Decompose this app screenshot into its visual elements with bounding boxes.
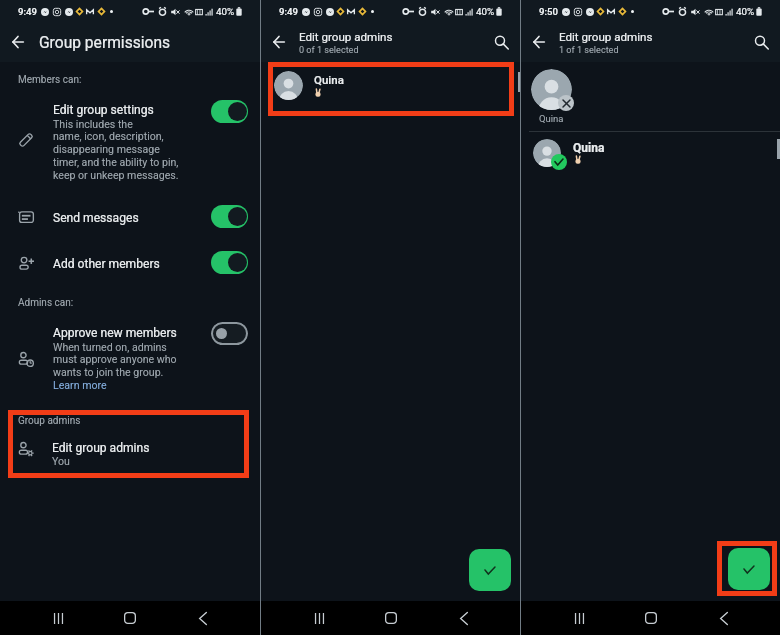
staticText: Members can: [18, 74, 82, 86]
button[interactable]: Navigate up [526, 29, 552, 55]
button[interactable]: Recents [36, 601, 80, 635]
button[interactable]: Remove Quina [528, 66, 580, 124]
staticText: Edit group admins [299, 30, 393, 44]
button[interactable]: Back [702, 601, 746, 635]
button[interactable]: Recents [557, 601, 601, 635]
staticText: 9:50 [539, 6, 558, 17]
staticText: 0 of 1 selected [299, 45, 359, 56]
staticText: 9:49 [18, 6, 37, 17]
staticText: Edit group admins [52, 441, 150, 455]
button[interactable]: Toggle on [211, 100, 248, 123]
button[interactable]: Toggle on [211, 251, 248, 274]
staticText: Send messages [53, 211, 139, 225]
button[interactable]: Navigate up [5, 29, 31, 55]
button[interactable]: Back [442, 601, 486, 635]
button[interactable]: Toggle on [211, 205, 248, 228]
staticText: Group admins [18, 415, 81, 427]
staticText: Quina [314, 73, 344, 86]
staticText: This includes the name, icon, descriptio… [53, 118, 179, 182]
button[interactable]: Quina [261, 64, 520, 114]
staticText: Quina [539, 113, 564, 124]
staticText: 40% [216, 6, 235, 17]
staticText: Add other members [53, 257, 160, 271]
staticText: 40% [736, 6, 755, 17]
staticText: Quina [573, 141, 605, 155]
button[interactable]: Back [181, 601, 225, 635]
staticText: When turned on, admins must approve anyo… [53, 341, 177, 379]
button[interactable]: Quina selected [521, 133, 780, 175]
staticText: Approve new members [53, 326, 177, 340]
button[interactable]: Recents [297, 601, 341, 635]
button[interactable]: Search [488, 29, 514, 55]
staticText: Edit group admins [559, 30, 653, 44]
button[interactable]: Edit group admins [0, 434, 260, 474]
button[interactable]: Navigate up [266, 29, 292, 55]
button[interactable]: Send messages [0, 200, 260, 233]
button[interactable]: Edit group settings [0, 96, 260, 182]
button[interactable]: Home [108, 601, 152, 635]
staticText: Admins can: [18, 297, 74, 309]
button[interactable]: Approve new members [0, 320, 260, 392]
staticText: You [52, 455, 70, 467]
button[interactable]: Add other members [0, 246, 260, 279]
button[interactable]: Home [629, 601, 673, 635]
button[interactable]: Search [748, 29, 774, 55]
staticText: 9:49 [279, 6, 298, 17]
staticText: Edit group settings [53, 103, 154, 117]
staticText: 40% [476, 6, 495, 17]
button[interactable]: Confirm [469, 549, 511, 591]
button[interactable]: Home [369, 601, 413, 635]
button[interactable]: Toggle off [211, 322, 248, 345]
button[interactable]: Learn more [53, 379, 107, 391]
staticText: Group permissions [39, 34, 171, 52]
staticText: 1 of 1 selected [559, 45, 619, 56]
button[interactable]: Confirm [728, 548, 770, 590]
